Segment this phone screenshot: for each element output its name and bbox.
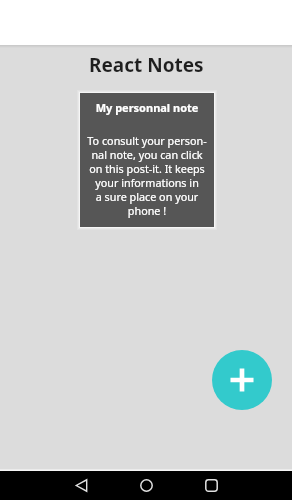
button[interactable]: Home — [131, 471, 161, 500]
staticText: To consult your person- nal note, you ca… — [80, 133, 214, 218]
button[interactable]: Add note — [212, 350, 272, 410]
button[interactable]: My personnal note — [80, 93, 214, 227]
staticText: My personnal note — [80, 100, 214, 115]
button[interactable]: Back — [66, 471, 96, 500]
staticText: React Notes — [89, 52, 204, 76]
button[interactable]: Recent apps — [196, 471, 226, 500]
